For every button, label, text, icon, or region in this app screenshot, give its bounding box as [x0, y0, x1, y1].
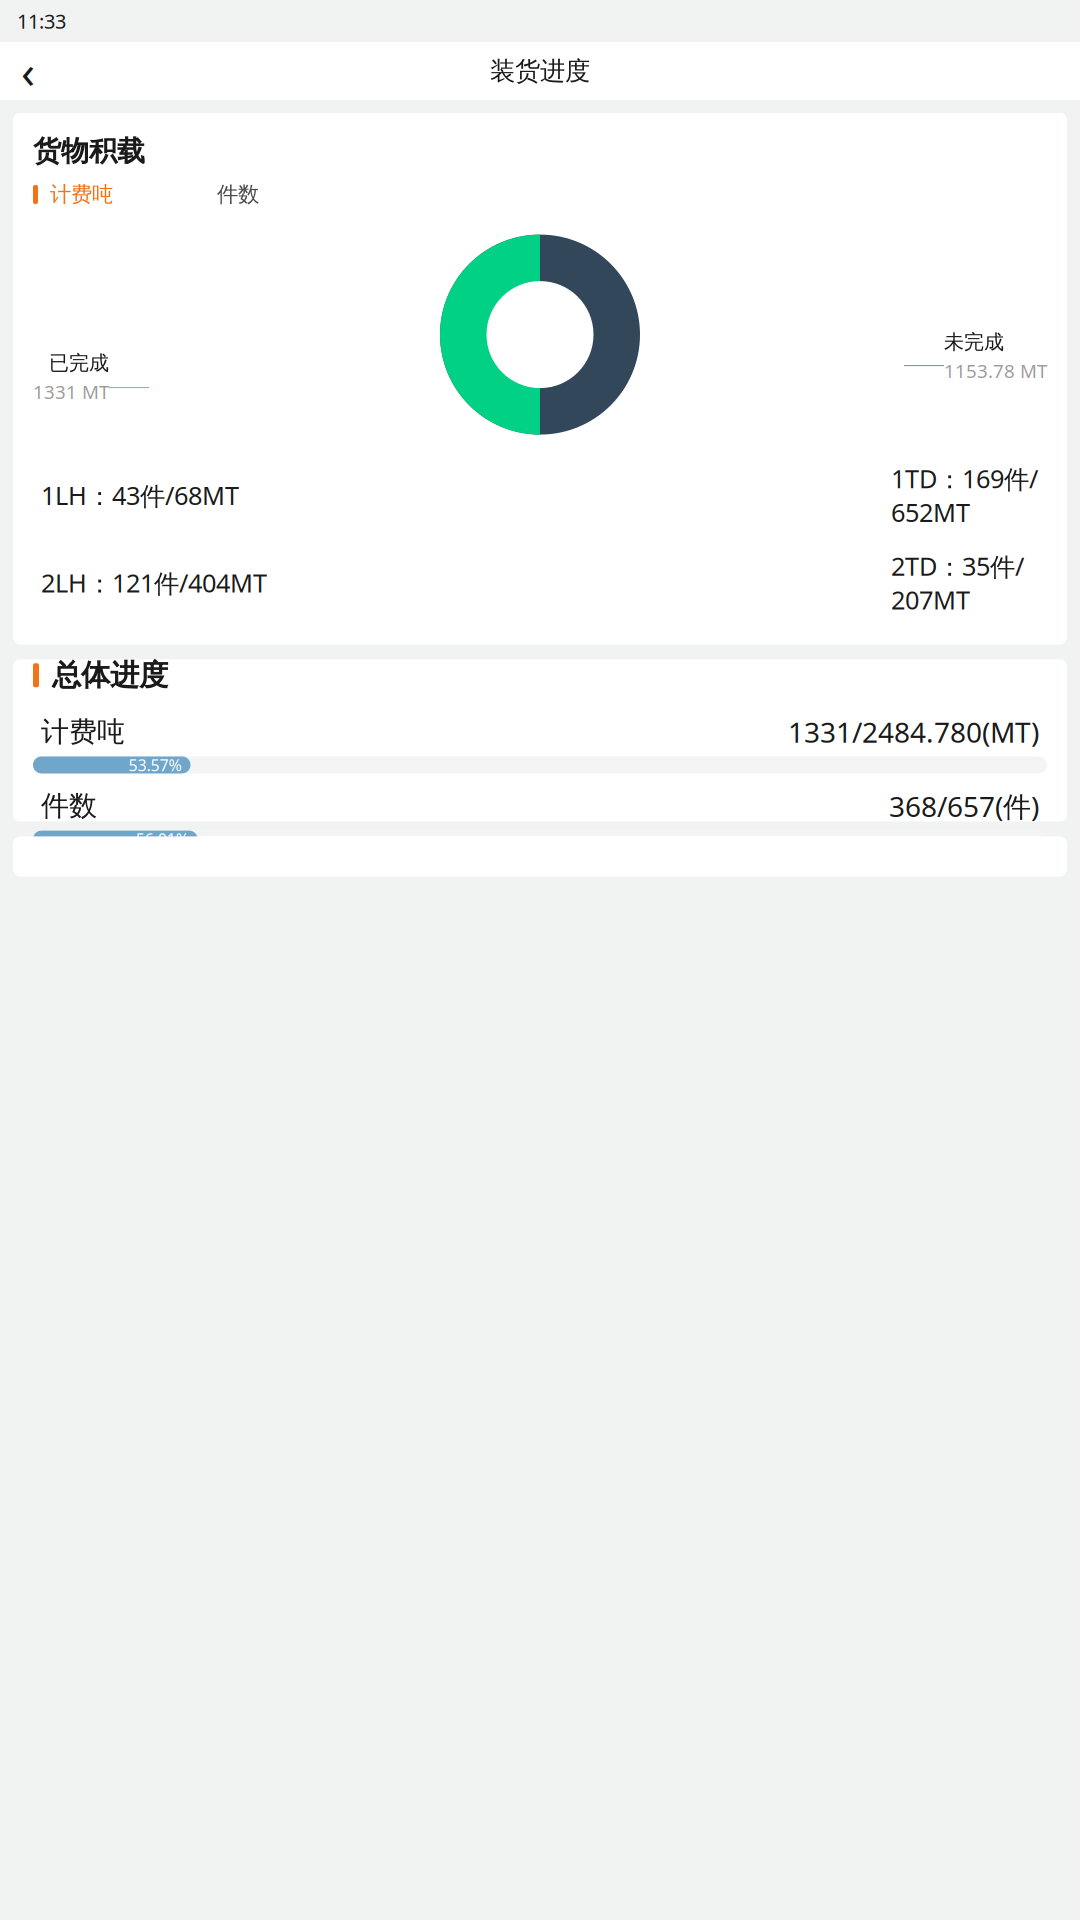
staticText: 53.57% — [128, 754, 181, 775]
staticText: 件数 — [217, 181, 259, 208]
staticText: 总体进度 — [52, 657, 168, 693]
staticText: 已完成 — [49, 351, 109, 375]
staticText: 1TD：169件/652MT — [891, 462, 1038, 529]
staticText: ‹ — [21, 41, 35, 101]
staticText: 11:33 — [17, 8, 66, 34]
button[interactable]: 计费吨 — [33, 177, 113, 212]
staticText: 装货进度 — [490, 55, 590, 86]
staticText: 1LH：43件/68MT — [41, 478, 239, 512]
button[interactable]: 件数 — [217, 177, 259, 212]
staticText: 计费吨 — [41, 715, 125, 749]
staticText: 368/657(件) — [889, 787, 1039, 825]
staticText: 56.01% — [136, 828, 189, 850]
staticText: 件数 — [41, 789, 97, 823]
staticText: 2LH：121件/404MT — [41, 566, 267, 600]
staticText: 未完成 — [944, 330, 1004, 354]
staticText: 计费吨 — [50, 181, 113, 208]
staticText: 2TD：35件/207MT — [891, 549, 1024, 616]
staticText: 1331 MT — [33, 379, 109, 404]
button[interactable]: 返回 — [6, 49, 50, 93]
staticText: 货物积载 — [33, 134, 145, 168]
staticText: 1153.78 MT — [944, 358, 1047, 383]
staticText: 1331/2484.780(MT) — [788, 713, 1039, 750]
